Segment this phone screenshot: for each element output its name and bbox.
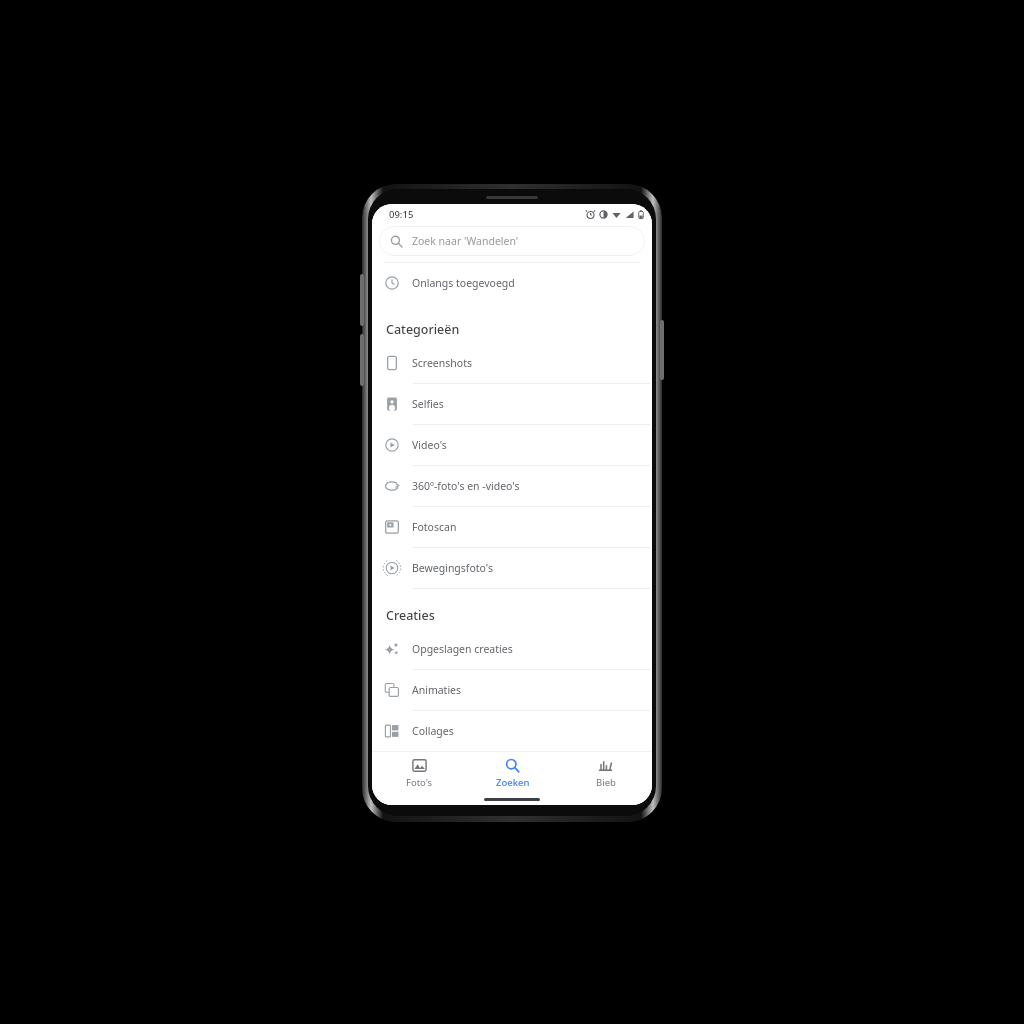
button[interactable]: Zoeken <box>466 752 559 794</box>
staticText: Screenshots <box>412 356 472 370</box>
button[interactable]: Bieb <box>559 752 652 794</box>
staticText: Selfies <box>412 397 444 411</box>
staticText: Zoek naar 'Wandelen' <box>412 234 519 248</box>
staticText: Bieb <box>596 776 616 789</box>
staticText: Onlangs toegevoegd <box>412 276 515 290</box>
button[interactable]: Foto's <box>372 752 466 794</box>
staticText: Foto's <box>406 776 433 789</box>
button[interactable]: Fotoscan <box>372 507 652 548</box>
button[interactable]: Screenshots <box>372 343 652 384</box>
staticText: Bewegingsfoto's <box>412 561 493 575</box>
staticText: Animaties <box>412 683 462 697</box>
staticText: Opgeslagen creaties <box>412 642 513 656</box>
staticText: Video's <box>412 438 447 452</box>
button[interactable]: Onlangs toegevoegd <box>372 263 652 303</box>
staticText: Categorieën <box>386 321 460 338</box>
staticText: Creaties <box>386 607 435 624</box>
button[interactable]: Video's <box>372 425 652 466</box>
button[interactable]: Collages <box>372 711 652 751</box>
button[interactable]: Bewegingsfoto's <box>372 548 652 589</box>
button[interactable]: 360º-foto's en -video's <box>372 466 652 507</box>
staticText: Zoeken <box>496 776 530 789</box>
staticText: Collages <box>412 724 454 738</box>
button[interactable]: Animaties <box>372 670 652 711</box>
staticText: 360º-foto's en -video's <box>412 479 520 493</box>
button[interactable]: Opgeslagen creaties <box>372 629 652 670</box>
staticText: 09:15 <box>389 208 414 221</box>
button[interactable]: Selfies <box>372 384 652 425</box>
button[interactable]: Zoek naar 'Wandelen' <box>379 226 645 256</box>
staticText: Fotoscan <box>412 520 457 534</box>
